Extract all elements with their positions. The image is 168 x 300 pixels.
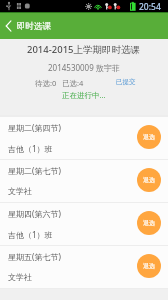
staticText: 吉他（1）班 (8, 229, 53, 240)
button[interactable]: 退选 (137, 125, 161, 149)
staticText: 20:54 (139, 1, 161, 13)
staticText: 退选 (143, 262, 155, 270)
staticText: 星期四(第六节) (8, 208, 61, 219)
staticText: 星期二(第七节) (8, 165, 61, 176)
staticText: 退选 (143, 219, 155, 227)
button[interactable]: 星期二(第四节) (0, 117, 168, 160)
staticText: 即时选课 (17, 21, 51, 32)
staticText: 已提交 (116, 78, 136, 86)
button[interactable]: 星期四(第六节) (0, 203, 168, 246)
staticText: 吉他（1）班 (8, 143, 53, 154)
staticText: 退选 (143, 176, 155, 184)
button[interactable]: 退选 (137, 168, 161, 192)
button[interactable]: 已提交 (116, 78, 136, 86)
staticText: 文学社 (8, 186, 32, 196)
staticText: 正在进行中... (62, 90, 106, 100)
staticText: 2014530009 敖宇菲 (48, 62, 120, 73)
button[interactable]: 星期二(第七节) (0, 160, 168, 203)
button[interactable]: Back (0, 13, 168, 39)
staticText: 2014-2015上学期即时选课 (27, 43, 141, 56)
button[interactable]: 退选 (137, 254, 161, 278)
button[interactable]: 星期五(第七节) (0, 246, 168, 289)
button[interactable]: 退选 (137, 211, 161, 235)
staticText: 退选 (143, 133, 155, 141)
staticText: 待选:0 (35, 78, 57, 88)
staticText: 文学社 (8, 272, 32, 282)
staticText: 星期五(第七节) (8, 251, 61, 262)
staticText: 已选:4 (62, 78, 84, 88)
staticText: 星期二(第四节) (8, 122, 61, 133)
